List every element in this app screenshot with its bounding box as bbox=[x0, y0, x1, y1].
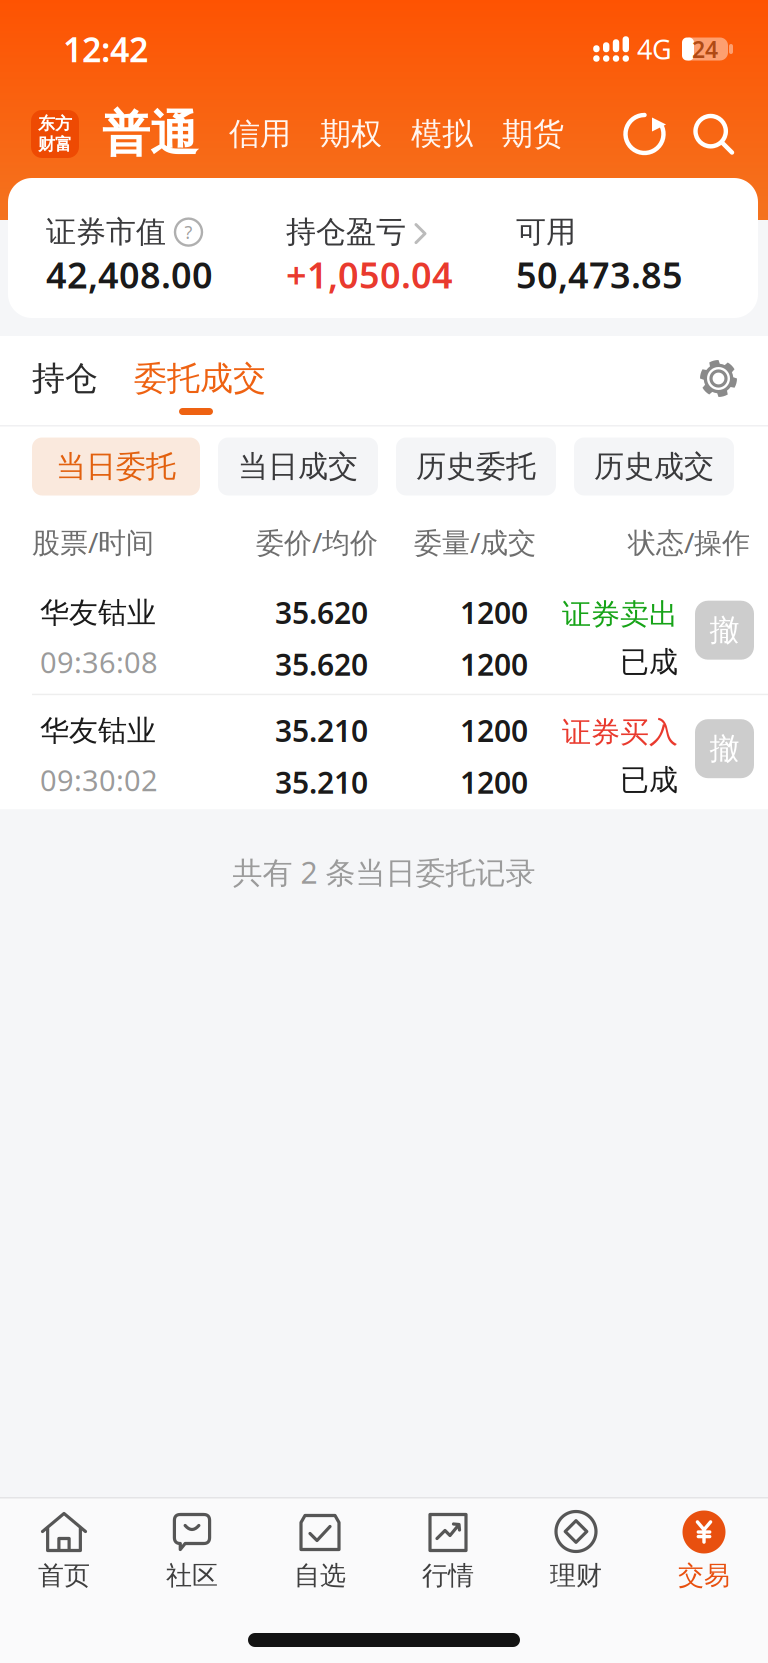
staticText: 委价/均价 bbox=[256, 523, 378, 561]
staticText: 华友钴业 bbox=[40, 713, 156, 749]
staticText: 期货 bbox=[502, 115, 564, 153]
button[interactable]: 行情 bbox=[384, 1509, 512, 1591]
button[interactable]: 当日委托 bbox=[32, 437, 200, 495]
staticText: 1200 bbox=[460, 644, 528, 684]
button[interactable]: 历史成交 bbox=[574, 437, 734, 495]
staticText: 当日成交 bbox=[238, 448, 358, 485]
staticText: 已成 bbox=[620, 644, 678, 680]
staticText: 当日委托 bbox=[56, 448, 176, 485]
staticText: 期权 bbox=[320, 115, 382, 153]
staticText: 财富 bbox=[38, 134, 72, 155]
staticText: 撤 bbox=[709, 612, 739, 649]
button[interactable]: 持仓盈亏 bbox=[286, 214, 516, 298]
staticText: 首页 bbox=[38, 1559, 90, 1591]
button[interactable]: 社区 bbox=[128, 1509, 256, 1591]
staticText: 12:42 bbox=[63, 26, 148, 72]
button[interactable]: 期权 bbox=[291, 115, 382, 153]
button[interactable]: 交易 bbox=[640, 1510, 768, 1591]
staticText: 35.210 bbox=[275, 762, 368, 802]
button[interactable]: 当日成交 bbox=[218, 437, 378, 495]
staticText: 信用 bbox=[229, 115, 291, 153]
staticText: 状态/操作 bbox=[628, 523, 750, 561]
button[interactable]: 刷新 bbox=[623, 112, 666, 155]
staticText: 委量/成交 bbox=[414, 523, 536, 561]
button[interactable]: 普通 bbox=[79, 104, 198, 163]
staticText: 可用 bbox=[516, 214, 576, 250]
button[interactable]: 撤单 bbox=[695, 719, 754, 778]
staticText: 历史成交 bbox=[594, 448, 714, 485]
staticText: ? bbox=[184, 220, 192, 244]
staticText: 股票/时间 bbox=[32, 523, 154, 561]
staticText: 50,473.85 bbox=[516, 250, 683, 298]
staticText: 行情 bbox=[422, 1559, 474, 1591]
staticText: 理财 bbox=[550, 1559, 602, 1591]
staticText: 东方 bbox=[38, 113, 72, 134]
staticText: 1200 bbox=[460, 710, 528, 750]
button[interactable]: 自选 bbox=[256, 1509, 384, 1591]
staticText: 1200 bbox=[460, 592, 528, 632]
button[interactable]: 持仓 bbox=[0, 358, 98, 399]
button[interactable]: 理财 bbox=[512, 1509, 640, 1591]
staticText: 证券买入 bbox=[562, 715, 678, 750]
button[interactable]: 设置 bbox=[700, 360, 768, 397]
staticText: +1,050.04 bbox=[286, 250, 453, 298]
staticText: 持仓 bbox=[32, 358, 98, 399]
staticText: 已成 bbox=[620, 762, 678, 798]
staticText: 证券卖出 bbox=[562, 597, 678, 632]
staticText: 4G bbox=[637, 31, 672, 67]
staticText: 自选 bbox=[294, 1559, 346, 1591]
staticText: 35.210 bbox=[275, 710, 368, 750]
staticText: 09:30:02 bbox=[40, 761, 158, 799]
button[interactable]: 帮助 bbox=[175, 219, 202, 246]
staticText: 24 bbox=[692, 34, 718, 64]
button[interactable]: 首页 bbox=[0, 1509, 128, 1591]
button[interactable]: 模拟 bbox=[382, 115, 473, 153]
button[interactable]: 期货 bbox=[473, 115, 564, 153]
staticText: 模拟 bbox=[411, 115, 473, 153]
button[interactable]: 信用 bbox=[198, 115, 291, 153]
staticText: 交易 bbox=[678, 1559, 730, 1591]
staticText: 华友钴业 bbox=[40, 595, 156, 631]
staticText: 普通 bbox=[102, 104, 198, 163]
staticText: 1200 bbox=[460, 762, 528, 802]
staticText: 撤 bbox=[709, 730, 739, 767]
staticText: 证券市值 bbox=[46, 214, 166, 250]
button[interactable]: 搜索 bbox=[666, 113, 734, 154]
staticText: 共有 2 条当日委托记录 bbox=[232, 852, 535, 892]
button[interactable]: 委托成交 bbox=[98, 358, 266, 399]
staticText: 35.620 bbox=[275, 592, 368, 632]
staticText: 社区 bbox=[166, 1559, 218, 1591]
button[interactable]: 历史委托 bbox=[396, 437, 556, 495]
staticText: 42,408.00 bbox=[46, 250, 213, 298]
staticText: 持仓盈亏 bbox=[286, 214, 406, 250]
button[interactable]: 撤单 bbox=[695, 601, 754, 660]
staticText: 35.620 bbox=[275, 644, 368, 684]
staticText: 委托成交 bbox=[134, 358, 266, 399]
staticText: 历史委托 bbox=[416, 448, 536, 485]
staticText: 09:36:08 bbox=[40, 643, 158, 681]
